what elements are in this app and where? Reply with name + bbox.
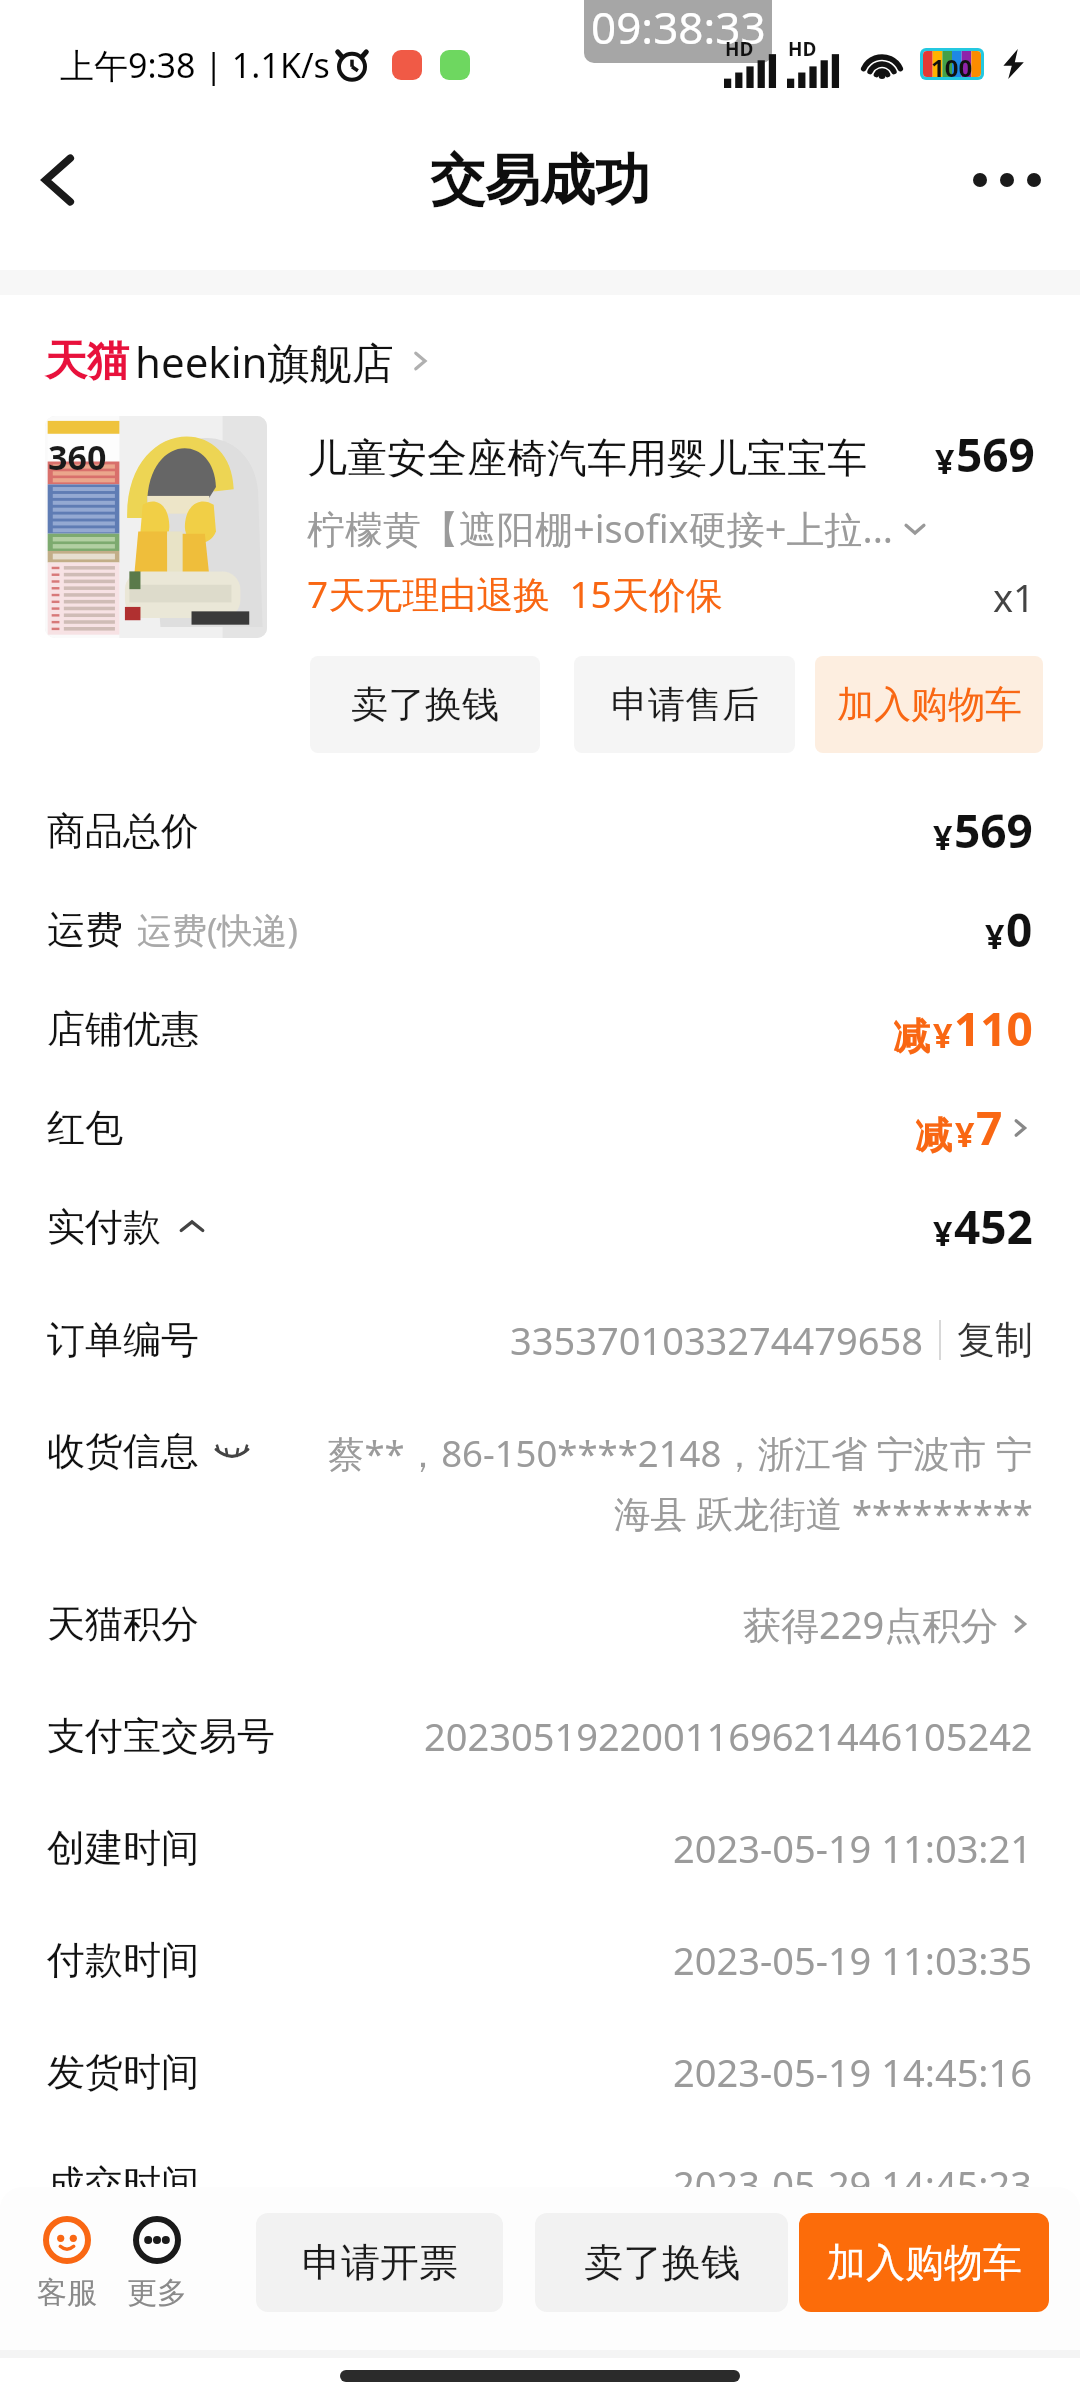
- button[interactable]: 客服: [33, 2216, 101, 2312]
- staticText: 获得229点积分: [743, 1598, 999, 1650]
- staticText: ¥: [935, 438, 955, 484]
- button[interactable]: 红包: [47, 1078, 1033, 1177]
- staticText: ¥: [933, 814, 953, 860]
- button[interactable]: 订单编号: [47, 1276, 1033, 1403]
- button[interactable]: Back: [8, 130, 108, 230]
- staticText: 成交时间: [47, 2160, 199, 2208]
- staticText: 柠檬黄【遮阳棚+isofix硬接+上拉...: [307, 502, 893, 554]
- staticText: 海县 跃龙街道 *********: [614, 1488, 1033, 1538]
- button[interactable]: 加入购物车: [799, 2213, 1049, 2312]
- staticText: x1: [993, 571, 1035, 623]
- staticText: 客服: [37, 2274, 97, 2312]
- button[interactable]: 天猫: [45, 330, 1080, 392]
- staticText: 452: [954, 1195, 1033, 1258]
- staticText: 天猫: [45, 335, 129, 388]
- button[interactable]: More options: [957, 130, 1057, 230]
- staticText: 2023-05-19 11:03:21: [673, 1822, 1033, 1874]
- staticText: 7: [976, 1096, 1003, 1159]
- staticText: 加入购物车: [827, 2238, 1022, 2287]
- staticText: 减: [915, 1112, 952, 1159]
- staticText: 加入购物车: [837, 681, 1022, 728]
- staticText: 商品总价: [47, 807, 199, 855]
- staticText: 申请售后: [611, 681, 759, 728]
- staticText: 减: [893, 1013, 930, 1060]
- staticText: HD: [788, 36, 817, 62]
- staticText: 复制: [957, 1316, 1033, 1364]
- staticText: ¥: [933, 1210, 953, 1256]
- staticText: 110: [954, 997, 1033, 1060]
- button[interactable]: 支付宝交易号: [47, 1680, 1033, 1792]
- button[interactable]: 店铺优惠: [47, 979, 1033, 1078]
- staticText: 2023051922001169621446105242: [424, 1710, 1033, 1762]
- staticText: ¥: [985, 913, 1005, 959]
- button[interactable]: 发货时间: [47, 2016, 1033, 2128]
- button[interactable]: 申请开票: [256, 2213, 503, 2312]
- staticText: heekin旗舰店: [135, 333, 394, 390]
- staticText: 卖了换钱: [351, 681, 499, 728]
- button[interactable]: 加入购物车: [815, 656, 1043, 753]
- button[interactable]: 成交时间: [47, 2128, 1033, 2240]
- button[interactable]: 申请售后: [574, 656, 795, 753]
- staticText: 2023-05-19 14:45:16: [673, 2046, 1033, 2098]
- staticText: 100: [931, 51, 973, 77]
- staticText: 2023-05-19 11:03:35: [673, 1934, 1033, 1986]
- staticText: 付款时间: [47, 1936, 199, 1984]
- staticText: 0: [1006, 898, 1033, 961]
- staticText: 7天无理由退换 15天价保: [307, 568, 723, 619]
- staticText: 天猫积分: [47, 1600, 199, 1648]
- staticText: 订单编号: [47, 1316, 199, 1364]
- staticText: 更多: [127, 2274, 187, 2312]
- staticText: 交易成功: [430, 146, 650, 215]
- staticText: 569: [954, 799, 1033, 862]
- staticText: 上午9:38 | 1.1K/s: [60, 42, 330, 88]
- staticText: 儿童安全座椅汽车用婴儿宝宝车: [307, 433, 867, 483]
- staticText: 09:38:33: [591, 0, 766, 57]
- button[interactable]: 运费: [47, 880, 1033, 979]
- staticText: 3353701033274479658: [510, 1314, 923, 1366]
- button[interactable]: 付款时间: [47, 1904, 1033, 2016]
- button[interactable]: 实付款: [47, 1177, 1033, 1276]
- staticText: 申请开票: [302, 2238, 458, 2287]
- staticText: 运费: [47, 906, 123, 954]
- staticText: 2023-05-29 14:45:23: [673, 2158, 1033, 2210]
- staticText: 店铺优惠: [47, 1005, 199, 1053]
- button[interactable]: 更多: [123, 2216, 191, 2312]
- button[interactable]: 天猫积分: [47, 1567, 1033, 1680]
- staticText: 实付款: [47, 1203, 161, 1251]
- staticText: 红包: [47, 1104, 123, 1152]
- button[interactable]: 收货信息: [0, 1403, 1080, 1567]
- button[interactable]: 创建时间: [47, 1792, 1033, 1904]
- staticText: ¥: [933, 1012, 953, 1058]
- staticText: 支付宝交易号: [47, 1712, 275, 1760]
- staticText: ¥: [955, 1111, 975, 1157]
- staticText: 360: [48, 434, 107, 480]
- staticText: 创建时间: [47, 1824, 199, 1872]
- staticText: 运费(快递): [137, 906, 299, 954]
- staticText: 收货信息: [47, 1427, 199, 1475]
- staticText: 发货时间: [47, 2048, 199, 2096]
- staticText: HD: [725, 36, 754, 62]
- button[interactable]: 卖了换钱: [310, 656, 540, 753]
- button[interactable]: 卖了换钱: [535, 2213, 788, 2312]
- staticText: 569: [956, 423, 1035, 486]
- button[interactable]: 商品总价: [47, 781, 1033, 880]
- staticText: 蔡**，86-150****2148，浙江省 宁波市 宁: [328, 1428, 1033, 1478]
- staticText: 卖了换钱: [584, 2238, 740, 2287]
